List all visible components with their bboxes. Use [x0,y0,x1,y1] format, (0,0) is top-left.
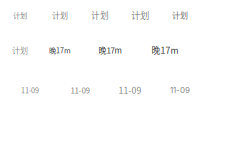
staticText: 计划 [13,10,27,20]
staticText: 晚17m [98,44,121,56]
staticText: 计划 [52,9,68,21]
staticText: 11-09 [170,85,190,95]
staticText: 计划 [131,8,149,22]
staticText: 晚17m [49,45,71,55]
staticText: 计划 [172,9,188,21]
staticText: 计划 [91,9,109,21]
staticText: 11-09 [21,85,39,95]
staticText: 计划 [12,44,28,56]
staticText: 11-09 [118,84,141,96]
staticText: 晚17m [151,44,178,56]
staticText: 11-09 [70,84,89,96]
